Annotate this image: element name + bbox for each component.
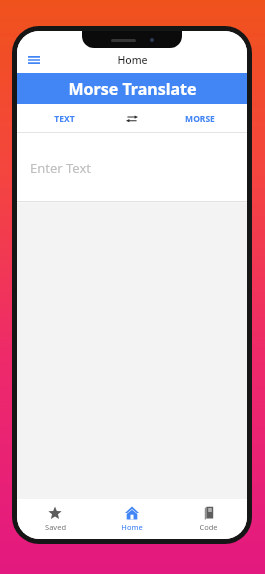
button[interactable]: Menu (23, 49, 45, 71)
button[interactable]: Swap translation direction (112, 104, 152, 133)
staticText: Code (199, 522, 218, 532)
button[interactable]: TEXT (17, 104, 112, 133)
staticText: MORSE (185, 113, 215, 125)
staticText: Home (117, 53, 148, 67)
staticText: Home (121, 522, 143, 532)
button[interactable]: Home (93, 499, 170, 539)
staticText: TEXT (54, 113, 75, 125)
staticText: Morse Translate (68, 78, 197, 100)
button[interactable]: Code (170, 499, 247, 539)
button[interactable]: Saved (17, 499, 93, 539)
button[interactable]: MORSE (152, 104, 247, 133)
staticText: Enter Text (30, 159, 91, 177)
staticText: Saved (45, 522, 66, 532)
